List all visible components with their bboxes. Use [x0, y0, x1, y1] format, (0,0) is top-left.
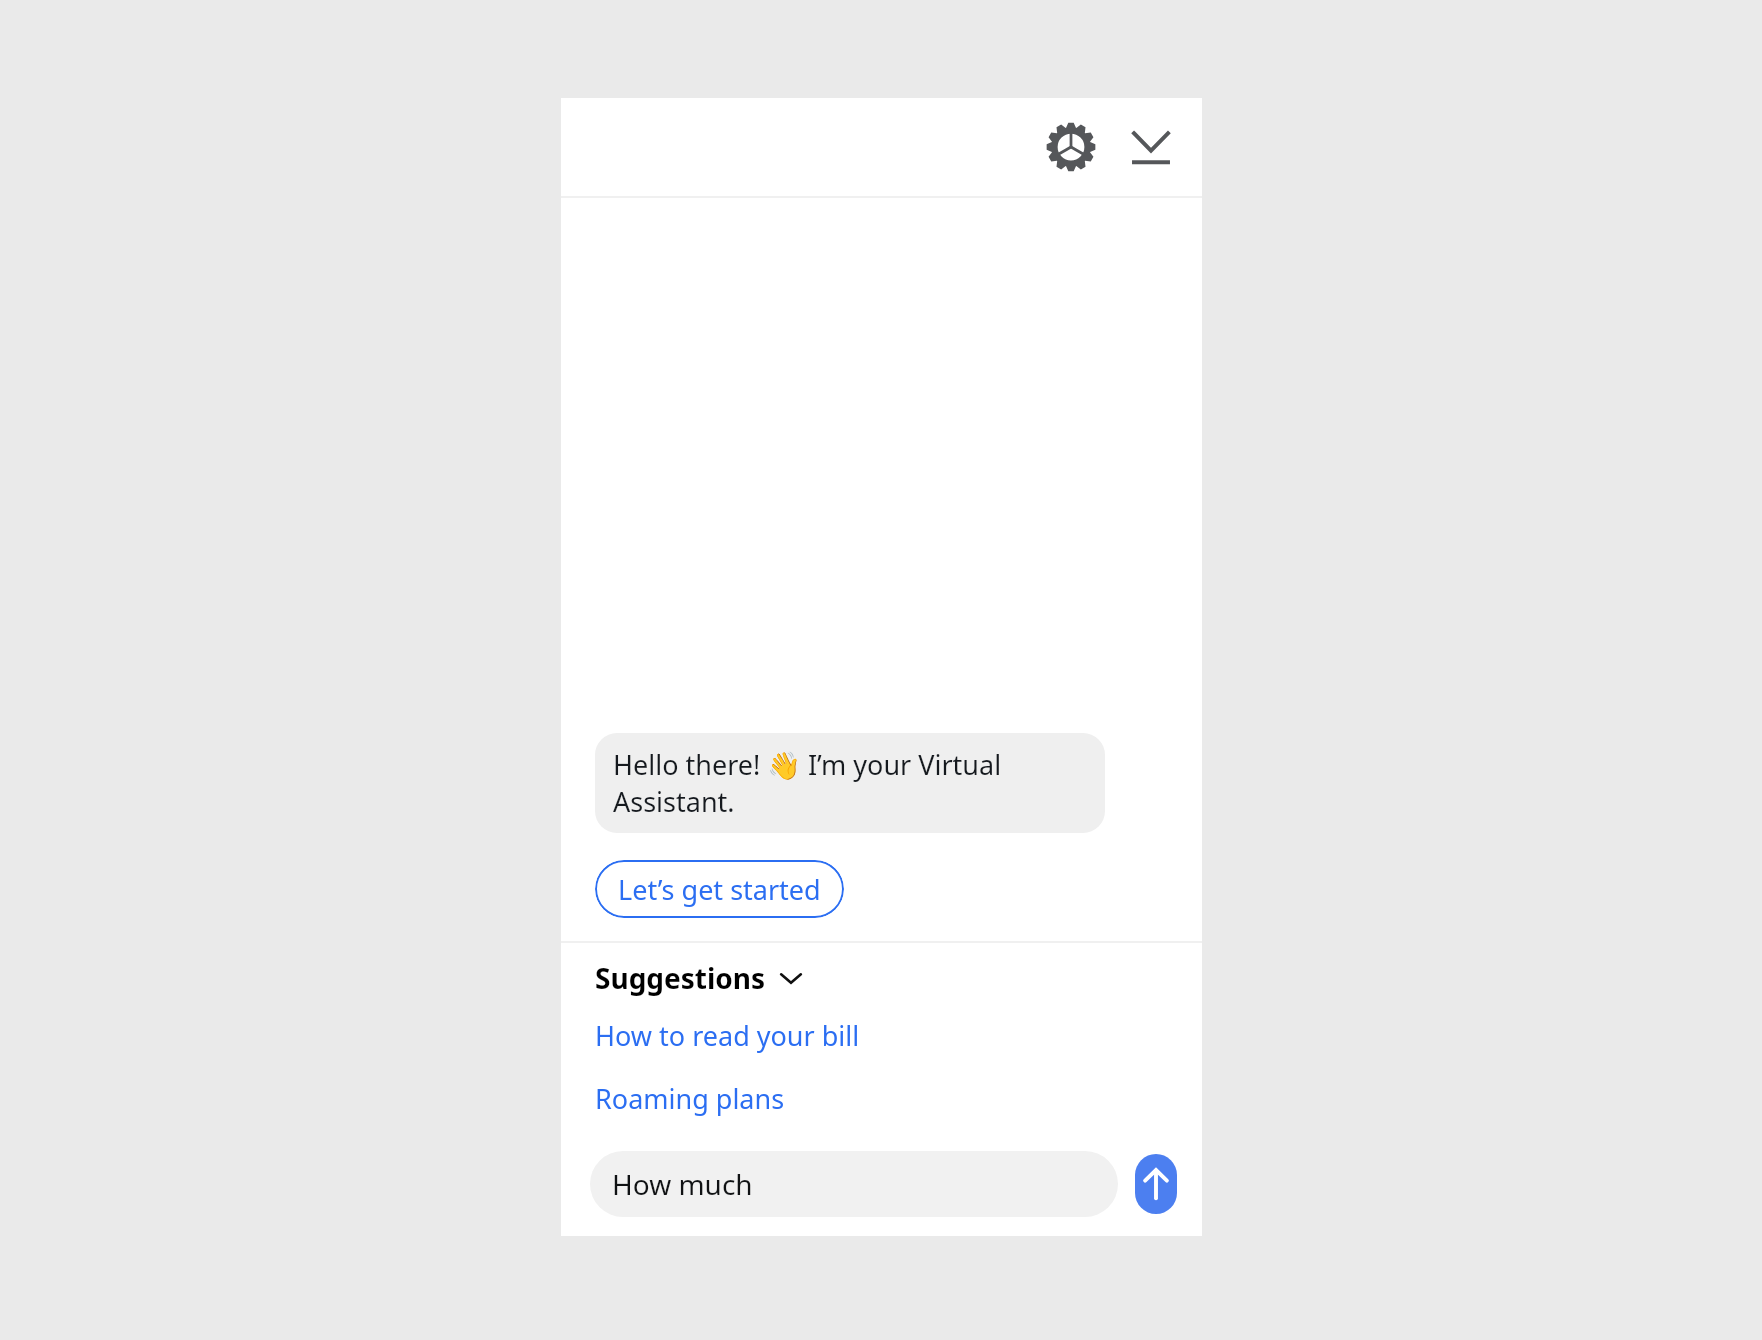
button[interactable]: Let’s get started [595, 860, 844, 918]
button[interactable]: Send message [1135, 1154, 1177, 1214]
staticText: Let’s get started [618, 871, 821, 908]
staticText: Suggestions [595, 959, 766, 997]
staticText: How to read your bill [595, 1017, 860, 1054]
button[interactable]: Minimize chat [1122, 118, 1180, 176]
button[interactable]: How much [590, 1151, 1118, 1217]
button[interactable]: Settings [1042, 118, 1100, 176]
staticText: Hello there! 👋 I’m your Virtual Assistan… [613, 746, 1087, 820]
staticText: Roaming plans [595, 1080, 785, 1117]
button[interactable]: How to read your bill [561, 1015, 1202, 1056]
button[interactable]: Roaming plans [561, 1078, 1202, 1119]
button[interactable]: Suggestions [595, 959, 804, 997]
button[interactable]: Hello there! 👋 I’m your Virtual Assistan… [595, 733, 1105, 833]
staticText: How much [612, 1165, 753, 1203]
